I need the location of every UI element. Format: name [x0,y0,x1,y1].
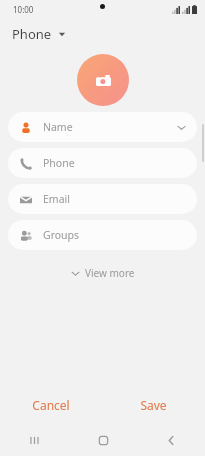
staticText: Phone [43,156,75,170]
button[interactable]: View more [63,262,143,284]
button[interactable]: Add contact photo [77,54,129,106]
staticText: 10:00 [13,4,34,15]
staticText: Cancel [32,397,70,413]
staticText: Phone [12,25,52,43]
button[interactable]: Email [8,184,197,214]
staticText: Save [140,397,167,413]
staticText: View more [85,266,135,280]
button[interactable]: Home [69,425,137,456]
button[interactable]: Back [137,425,205,456]
button[interactable]: Phone [10,22,68,46]
staticText: Email [43,192,70,206]
button[interactable]: Recent apps [0,425,69,456]
staticText: Groups [43,228,80,242]
button[interactable]: Phone [8,148,197,178]
button[interactable]: Save [102,389,205,421]
button[interactable]: Cancel [0,389,102,421]
button[interactable]: Name [8,112,197,142]
staticText: Name [43,120,73,134]
button[interactable]: Groups [8,220,197,250]
